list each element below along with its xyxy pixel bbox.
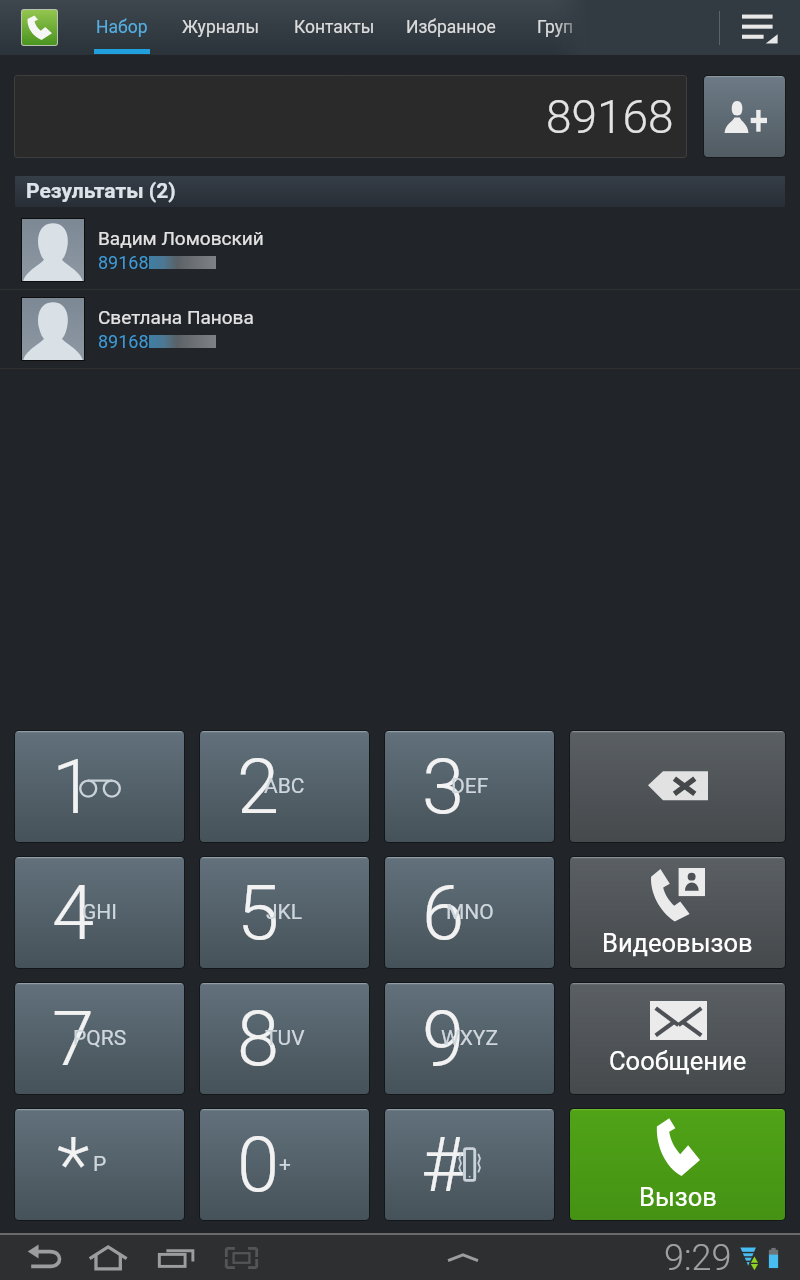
staticText: Сообщение	[609, 1046, 747, 1076]
button[interactable]: Back	[23, 1236, 66, 1280]
button[interactable]: Dialer	[22, 10, 57, 45]
button[interactable]: Контакты	[292, 0, 376, 55]
staticText: 0	[237, 1120, 280, 1209]
button[interactable]: *	[15, 1109, 184, 1220]
staticText: 3	[422, 742, 465, 831]
staticText: Результаты (2)	[26, 179, 176, 204]
staticText: Светлана Панова	[98, 306, 254, 328]
button[interactable]: Избранное	[404, 0, 498, 55]
staticText: 89168	[98, 331, 149, 352]
button[interactable]: 4	[15, 857, 184, 968]
button[interactable]: 6	[385, 857, 554, 968]
staticText: 9:29	[664, 1237, 732, 1279]
button[interactable]: 3	[385, 731, 554, 842]
staticText: TUV	[265, 1026, 305, 1051]
button[interactable]: 0	[200, 1109, 369, 1220]
button[interactable]: Светлана Панова	[0, 290, 800, 368]
staticText: Журналы	[182, 17, 260, 38]
staticText: 89168	[546, 90, 674, 144]
button[interactable]: Вызов	[570, 1109, 785, 1220]
staticText: 9	[422, 994, 465, 1083]
button[interactable]: More options	[720, 0, 800, 55]
button[interactable]: Recent apps	[153, 1236, 200, 1280]
staticText: 7	[52, 994, 95, 1083]
staticText: +	[279, 1152, 291, 1177]
staticText: 4	[52, 868, 95, 957]
staticText: DEF	[451, 774, 489, 799]
staticText: P	[93, 1152, 107, 1177]
button[interactable]: 2	[200, 731, 369, 842]
button[interactable]: Сообщение	[570, 983, 785, 1094]
staticText: 1	[52, 742, 95, 831]
button[interactable]: 5	[200, 857, 369, 968]
staticText: #	[421, 1120, 466, 1209]
button[interactable]: Видеовызов	[570, 857, 785, 968]
button[interactable]: 89168	[14, 75, 687, 158]
button[interactable]: 7	[15, 983, 184, 1094]
staticText: Избранное	[406, 17, 496, 38]
button[interactable]: #	[385, 1109, 554, 1220]
staticText: 6	[422, 868, 465, 957]
button[interactable]: Набор	[94, 0, 150, 55]
button[interactable]: 1	[15, 731, 184, 842]
staticText: 5	[237, 868, 280, 957]
button[interactable]: Вадим Ломовский	[0, 211, 800, 289]
button[interactable]: Show notifications	[442, 1236, 484, 1280]
staticText: Вадим Ломовский	[98, 227, 264, 249]
staticText: WXYZ	[441, 1026, 498, 1051]
staticText: 2	[237, 742, 280, 831]
button[interactable]: Груп	[530, 0, 580, 55]
staticText: *	[57, 1120, 90, 1209]
button[interactable]: 9	[385, 983, 554, 1094]
staticText: Контакты	[294, 17, 375, 38]
staticText: Видеовызов	[602, 928, 753, 958]
staticText: MNO	[446, 900, 494, 925]
staticText: GHI	[82, 900, 117, 925]
button[interactable]: Home	[84, 1236, 134, 1280]
staticText: 8	[237, 994, 280, 1083]
button[interactable]: Screenshot	[221, 1236, 262, 1280]
staticText: 89168	[98, 252, 149, 273]
button[interactable]: Backspace	[570, 731, 785, 842]
staticText: JKL	[266, 900, 303, 925]
button[interactable]: 8	[200, 983, 369, 1094]
staticText: ABC	[264, 774, 305, 799]
button[interactable]: Журналы	[180, 0, 262, 55]
staticText: Вызов	[639, 1182, 717, 1212]
button[interactable]: Add to contacts	[704, 76, 785, 157]
staticText: Набор	[96, 17, 148, 38]
staticText: Груп	[537, 17, 574, 38]
staticText: PQRS	[73, 1026, 127, 1051]
